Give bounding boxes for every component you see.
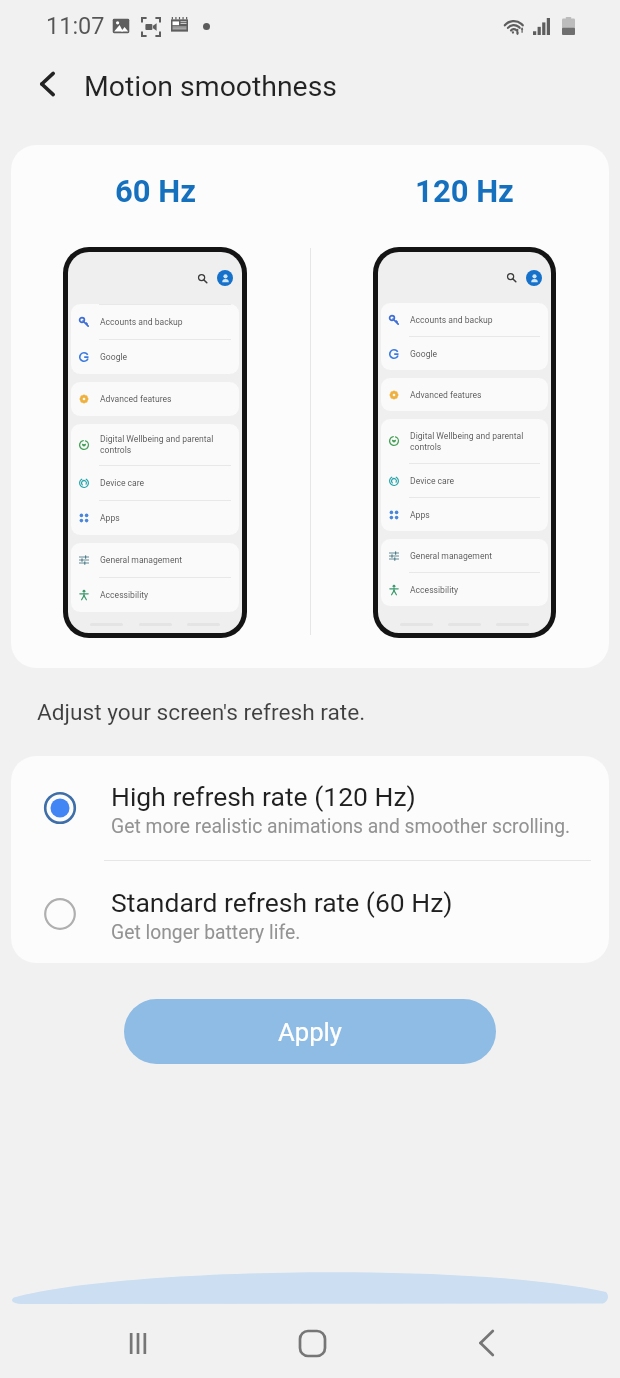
- staticText: Digital Wellbeing and parental controls: [100, 434, 224, 455]
- staticText: Adjust your screen's refresh rate.: [37, 699, 366, 726]
- staticText: Get more realistic animations and smooth…: [111, 815, 571, 838]
- staticText: Advanced features: [410, 390, 482, 400]
- staticText: Advanced features: [100, 394, 172, 404]
- staticText: 11:07: [46, 12, 105, 40]
- staticText: General management: [100, 555, 183, 565]
- button[interactable]: Standard refresh rate (60 Hz): [11, 862, 609, 963]
- staticText: General management: [410, 551, 493, 561]
- staticText: Google: [410, 349, 438, 359]
- staticText: Apply: [278, 1017, 343, 1047]
- staticText: Standard refresh rate (60 Hz): [111, 887, 453, 918]
- staticText: Get longer battery life.: [111, 921, 301, 944]
- staticText: Apps: [410, 510, 430, 520]
- staticText: Digital Wellbeing and parental controls: [410, 431, 534, 452]
- staticText: Device care: [410, 476, 455, 486]
- button[interactable]: Recents: [108, 1313, 168, 1373]
- button[interactable]: Back: [456, 1313, 516, 1373]
- staticText: Accounts and backup: [410, 315, 493, 325]
- button[interactable]: Home: [282, 1313, 342, 1373]
- staticText: 60 Hz: [115, 173, 196, 209]
- staticText: Accessibility: [100, 590, 149, 600]
- staticText: Accessibility: [410, 585, 459, 595]
- staticText: Apps: [100, 513, 120, 523]
- button[interactable]: Apply: [124, 999, 496, 1064]
- staticText: Motion smoothness: [84, 70, 337, 103]
- button[interactable]: Navigate up: [23, 60, 71, 108]
- staticText: High refresh rate (120 Hz): [111, 781, 416, 812]
- staticText: 120 Hz: [415, 173, 514, 209]
- staticText: Google: [100, 352, 128, 362]
- staticText: Device care: [100, 478, 145, 488]
- staticText: Accounts and backup: [100, 317, 183, 327]
- button[interactable]: High refresh rate (120 Hz): [11, 756, 609, 860]
